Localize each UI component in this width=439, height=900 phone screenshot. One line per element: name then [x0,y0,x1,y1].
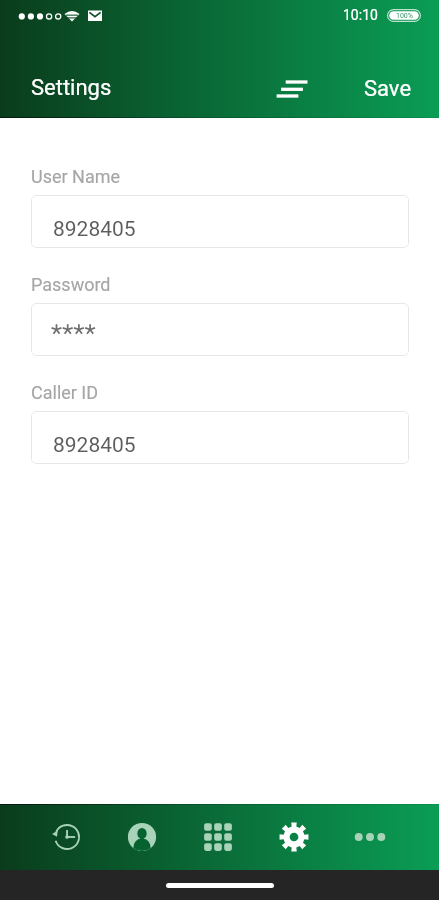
button[interactable]: Keypad [180,804,256,870]
button[interactable]: Recent calls [27,804,104,870]
button[interactable]: Settings [256,804,332,870]
staticText: User Name [31,166,121,187]
staticText: Caller ID [31,382,99,403]
staticText: Save [364,76,412,102]
button[interactable]: Contacts [104,804,180,870]
button[interactable]: 8928405 [31,411,409,464]
button[interactable]: More [332,804,408,870]
button[interactable]: Sort [261,66,317,114]
button[interactable] [31,303,409,356]
staticText: 8928405 [53,217,136,242]
button[interactable]: 8928405 [31,195,409,248]
button[interactable]: Settings [31,75,112,101]
staticText: Password [31,274,111,295]
staticText: 100% [396,12,413,20]
button[interactable]: Save [364,76,412,102]
staticText: 8928405 [53,433,136,458]
staticText: Settings [31,75,112,101]
staticText: 10:10 [343,7,378,23]
